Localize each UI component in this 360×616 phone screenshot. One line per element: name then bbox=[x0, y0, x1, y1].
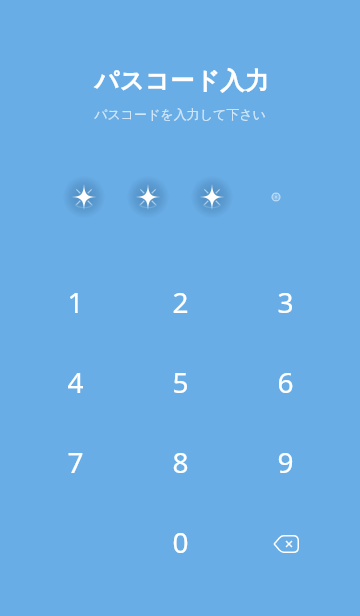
button[interactable]: 9 bbox=[233, 422, 338, 502]
button[interactable]: 0 bbox=[128, 502, 233, 582]
staticText: パスコード入力 bbox=[94, 66, 270, 96]
staticText: 4 bbox=[67, 363, 84, 401]
staticText: パスコードを入力して下さい bbox=[94, 106, 266, 122]
button[interactable]: 1 bbox=[23, 262, 128, 342]
button[interactable]: 2 bbox=[128, 262, 233, 342]
staticText: 7 bbox=[67, 443, 84, 481]
button[interactable]: 8 bbox=[128, 422, 233, 502]
staticText: 2 bbox=[172, 283, 189, 321]
staticText: 8 bbox=[172, 443, 189, 481]
button[interactable]: 4 bbox=[23, 342, 128, 422]
staticText: 9 bbox=[277, 443, 294, 481]
staticText: 6 bbox=[277, 363, 294, 401]
staticText: 3 bbox=[277, 283, 294, 321]
button[interactable]: Backspace bbox=[233, 502, 338, 582]
button[interactable]: 3 bbox=[233, 262, 338, 342]
button[interactable]: 5 bbox=[128, 342, 233, 422]
staticText: 0 bbox=[172, 523, 189, 561]
button[interactable]: 6 bbox=[233, 342, 338, 422]
staticText: 1 bbox=[67, 283, 84, 321]
button[interactable]: 7 bbox=[23, 422, 128, 502]
staticText: 5 bbox=[172, 363, 189, 401]
